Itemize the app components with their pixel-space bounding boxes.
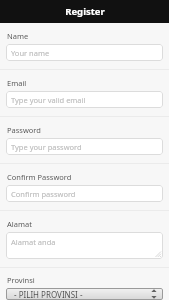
- staticText: Type your password: [11, 142, 82, 152]
- staticText: Your name: [11, 48, 50, 58]
- staticText: Type your valid email: [11, 95, 86, 105]
- button[interactable]: Type your password: [6, 138, 163, 155]
- staticText: Alamat anda: [11, 237, 56, 247]
- button[interactable]: Alamat anda: [6, 232, 163, 259]
- staticText: Confirm password: [11, 189, 76, 199]
- other: Open province dropdown: [6, 288, 163, 300]
- button[interactable]: Confirm password: [6, 185, 163, 202]
- staticText: Provinsi: [7, 275, 35, 285]
- staticText: Confirm Password: [7, 172, 72, 182]
- button[interactable]: Your name: [6, 44, 163, 61]
- staticText: Password: [7, 125, 41, 135]
- button[interactable]: - PILIH PROVINSI -: [6, 288, 163, 300]
- staticText: Alamat: [7, 219, 32, 229]
- staticText: Name: [7, 31, 29, 41]
- staticText: Email: [7, 78, 27, 88]
- staticText: - PILIH PROVINSI -: [14, 289, 83, 300]
- button[interactable]: Type your valid email: [6, 91, 163, 108]
- staticText: Register: [65, 5, 105, 18]
